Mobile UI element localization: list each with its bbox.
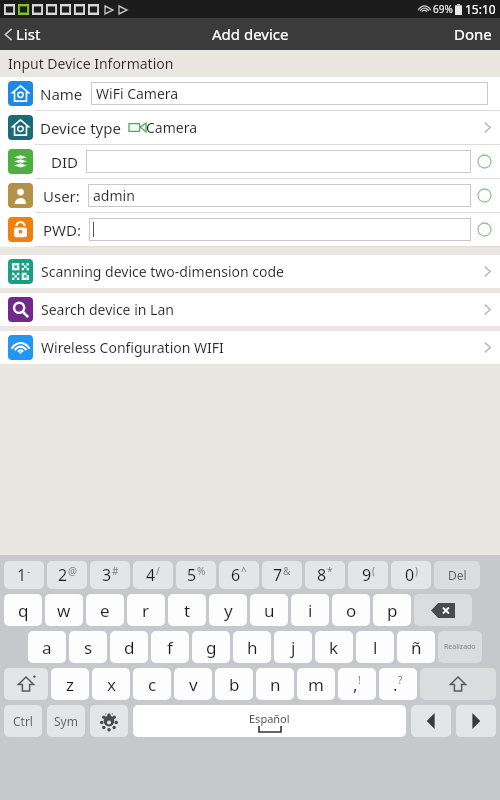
staticText: z xyxy=(66,673,74,696)
button[interactable]: f xyxy=(151,631,189,663)
staticText: h xyxy=(247,636,258,659)
button[interactable]: Name xyxy=(0,77,500,110)
button[interactable]: Shift xyxy=(4,668,48,700)
other: Help xyxy=(477,222,492,237)
button[interactable]: User: xyxy=(0,179,500,212)
button[interactable]: List xyxy=(0,24,49,44)
button[interactable]: 0 xyxy=(391,561,431,589)
button[interactable]: p xyxy=(373,594,411,626)
button[interactable]: Realizado xyxy=(438,631,482,663)
button[interactable]: 1 xyxy=(4,561,44,589)
button[interactable]: ñ xyxy=(397,631,435,663)
staticText: List xyxy=(16,24,41,44)
button[interactable]: PWD: xyxy=(0,213,500,246)
staticText: - xyxy=(27,564,31,578)
staticText: Ctrl xyxy=(13,713,33,729)
staticText: & xyxy=(283,564,291,578)
button[interactable]: 9 xyxy=(348,561,388,589)
staticText: a xyxy=(42,636,52,659)
button[interactable]: r xyxy=(127,594,165,626)
button[interactable]: Right xyxy=(456,705,496,737)
button[interactable]: Español xyxy=(133,705,406,737)
button[interactable]: q xyxy=(4,594,42,626)
staticText: ) xyxy=(415,564,418,578)
button[interactable]: w xyxy=(45,594,83,626)
button[interactable]: Search device in Lan xyxy=(0,293,500,326)
button[interactable]: Del xyxy=(434,561,480,589)
button[interactable]: Left xyxy=(411,705,451,737)
staticText: r xyxy=(142,599,150,622)
button[interactable]: 2 xyxy=(47,561,87,589)
button[interactable]: Sym xyxy=(47,705,85,737)
staticText: Input Device Information xyxy=(8,54,174,73)
button[interactable]: g xyxy=(192,631,230,663)
staticText: s xyxy=(84,636,93,659)
staticText: v xyxy=(189,673,198,696)
button[interactable]: DID xyxy=(0,145,500,178)
button[interactable]: Ctrl xyxy=(4,705,42,737)
button[interactable]: Wireless Configuration WIFI xyxy=(0,331,500,364)
button[interactable]: 6 xyxy=(219,561,259,589)
staticText: l xyxy=(373,636,378,659)
button[interactable]: d xyxy=(110,631,148,663)
staticText: 6 xyxy=(231,564,241,586)
button[interactable]: Scanning device two-dimension code xyxy=(0,255,500,288)
button[interactable]: x xyxy=(92,668,130,700)
button[interactable]: a xyxy=(28,631,66,663)
button[interactable]: . xyxy=(379,668,417,700)
staticText: Scanning device two-dimension code xyxy=(41,262,284,281)
staticText: Add device xyxy=(212,24,289,44)
staticText: ! xyxy=(358,673,361,687)
staticText: w xyxy=(57,599,71,622)
staticText: Del xyxy=(448,567,467,583)
button[interactable]: h xyxy=(233,631,271,663)
staticText: q xyxy=(18,599,29,622)
staticText: ñ xyxy=(411,636,422,659)
button[interactable]: Settings xyxy=(90,705,128,737)
staticText: 15:10 xyxy=(465,1,496,17)
staticText: Realizado xyxy=(444,642,476,652)
staticText: # xyxy=(112,564,119,578)
button[interactable]: o xyxy=(332,594,370,626)
button[interactable]: i xyxy=(291,594,329,626)
staticText: t xyxy=(184,599,191,622)
button[interactable]: u xyxy=(250,594,288,626)
staticText: 8 xyxy=(317,564,327,586)
button[interactable]: m xyxy=(297,668,335,700)
staticText: 1 xyxy=(17,564,27,586)
button[interactable]: t xyxy=(168,594,206,626)
button[interactable]: , xyxy=(338,668,376,700)
button[interactable]: 7 xyxy=(262,561,302,589)
staticText: o xyxy=(346,599,357,622)
button[interactable]: z xyxy=(51,668,89,700)
staticText: y xyxy=(224,599,233,622)
button[interactable]: Shift xyxy=(420,668,496,700)
staticText: admin xyxy=(93,186,135,205)
staticText: n xyxy=(270,673,281,696)
staticText: @ xyxy=(68,564,77,578)
button[interactable]: k xyxy=(315,631,353,663)
staticText: d xyxy=(124,636,135,659)
staticText: 9 xyxy=(362,564,372,586)
button[interactable]: c xyxy=(133,668,171,700)
button[interactable]: 8 xyxy=(305,561,345,589)
button[interactable]: Done xyxy=(446,24,500,44)
staticText: Search device in Lan xyxy=(41,300,174,319)
button[interactable]: 3 xyxy=(90,561,130,589)
button[interactable]: 4 xyxy=(133,561,173,589)
button[interactable]: v xyxy=(174,668,212,700)
button[interactable]: j xyxy=(274,631,312,663)
button[interactable]: 5 xyxy=(176,561,216,589)
button[interactable]: Backspace xyxy=(414,594,472,626)
other: Help xyxy=(477,188,492,203)
staticText: b xyxy=(229,673,240,696)
button[interactable]: l xyxy=(356,631,394,663)
button[interactable]: b xyxy=(215,668,253,700)
button[interactable]: n xyxy=(256,668,294,700)
button[interactable]: y xyxy=(209,594,247,626)
button[interactable]: e xyxy=(86,594,124,626)
staticText: User: xyxy=(43,186,80,206)
other: Help xyxy=(477,154,492,169)
button[interactable]: Device type xyxy=(0,111,500,144)
button[interactable]: s xyxy=(69,631,107,663)
